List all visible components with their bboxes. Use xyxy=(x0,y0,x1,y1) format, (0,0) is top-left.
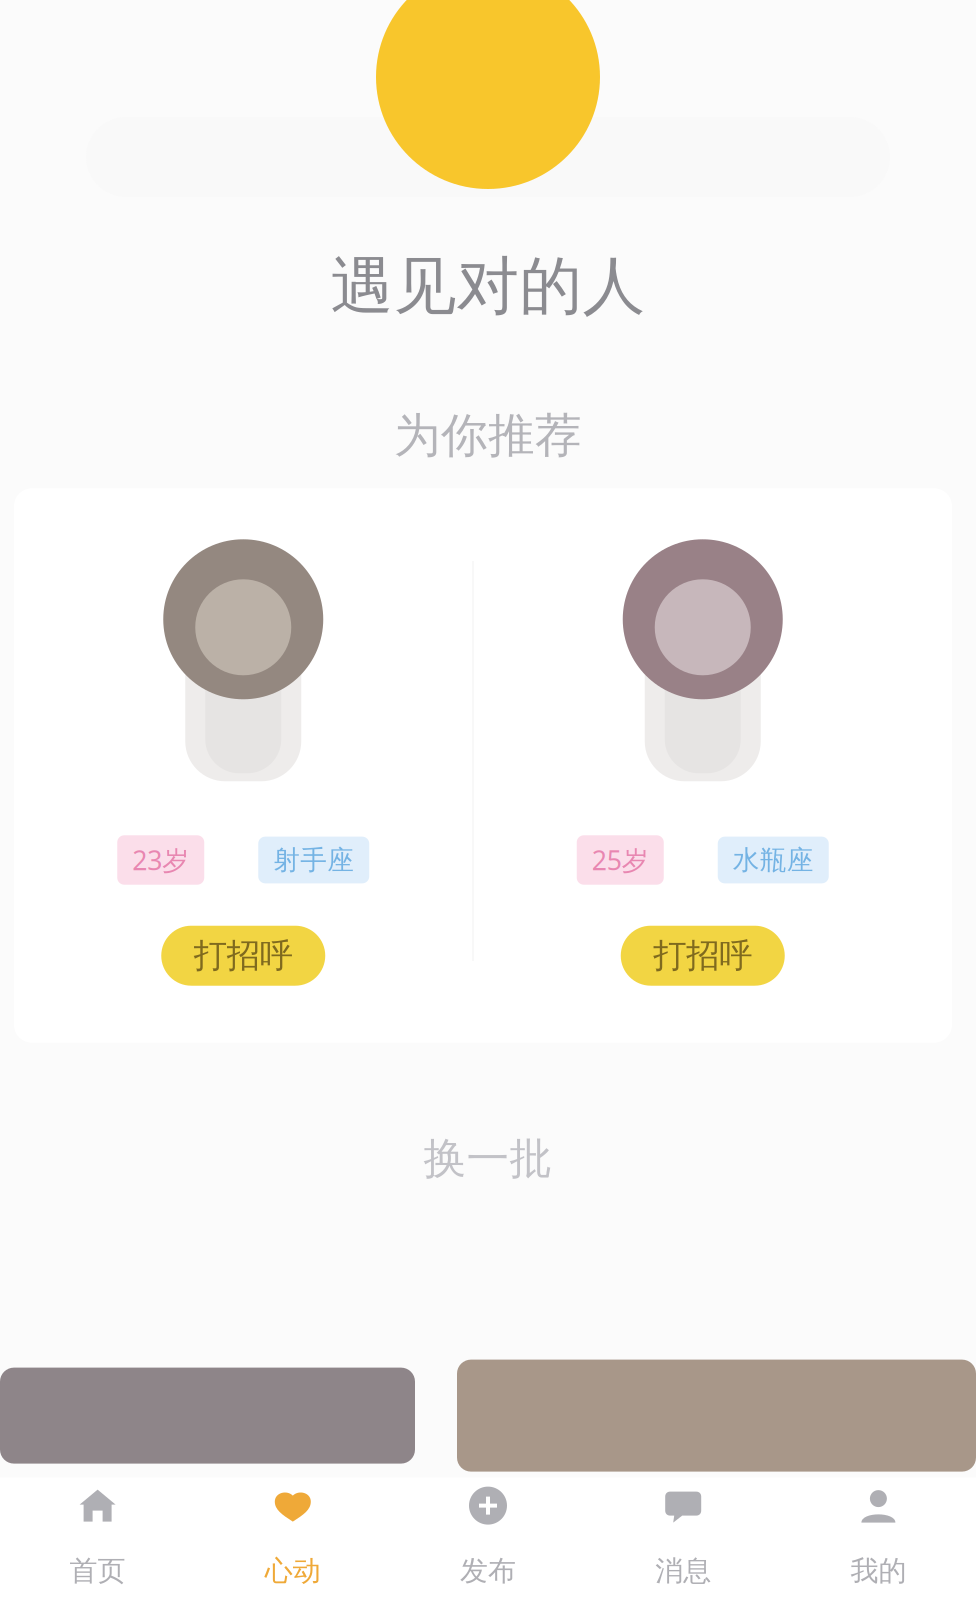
button[interactable]: 25岁 xyxy=(577,536,829,986)
staticText: 心动 xyxy=(265,1554,321,1588)
staticText: 遇见对的人 xyxy=(330,248,645,325)
button[interactable]: 23岁 xyxy=(117,536,369,986)
button[interactable]: 换一批 xyxy=(399,1125,576,1193)
staticText: 射手座 xyxy=(273,844,354,876)
button[interactable]: 消息 xyxy=(586,1478,781,1600)
staticText: 25岁 xyxy=(592,842,649,878)
staticText: 换一批 xyxy=(423,1133,552,1185)
staticText: 消息 xyxy=(655,1554,711,1588)
staticText: 23岁 xyxy=(132,842,189,878)
staticText: 首页 xyxy=(70,1554,126,1588)
button[interactable]: 发布 xyxy=(390,1478,586,1600)
staticText: 发布 xyxy=(460,1554,516,1588)
button[interactable]: 我的 xyxy=(781,1478,976,1600)
button[interactable]: 心动 xyxy=(195,1478,390,1600)
staticText: 水瓶座 xyxy=(733,844,814,876)
button[interactable]: 首页 xyxy=(0,1478,195,1600)
staticText: 打招呼 xyxy=(653,935,752,976)
staticText: 打招呼 xyxy=(194,935,293,976)
staticText: 为你推荐 xyxy=(394,407,582,464)
staticText: 我的 xyxy=(850,1554,906,1588)
